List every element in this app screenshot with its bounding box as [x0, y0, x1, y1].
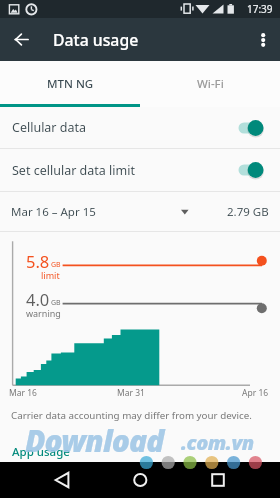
button[interactable]: Set cellular data limit	[0, 149, 280, 191]
staticText: GB	[51, 260, 61, 270]
button[interactable]: Mar 16 – Apr 15	[0, 192, 280, 231]
staticText: MTN NG	[47, 76, 94, 92]
staticText: 2.79 GB	[227, 204, 269, 220]
staticText: Mar 16	[9, 387, 37, 399]
button[interactable]: Navigate up	[0, 18, 44, 61]
staticText: Carrier data accounting may differ from …	[11, 409, 252, 422]
staticText: Mar 16 – Apr 15	[11, 204, 96, 220]
button[interactable]: MTN NG	[0, 61, 140, 107]
staticText: Download	[25, 420, 164, 461]
staticText: 4.0	[26, 288, 50, 310]
staticText: Apr 16	[242, 387, 269, 399]
staticText: App usage	[12, 444, 70, 460]
staticText: 5.8	[26, 250, 50, 272]
button[interactable]: Recent apps	[205, 467, 231, 493]
staticText: Cellular data	[12, 119, 87, 136]
staticText: warning	[26, 307, 61, 319]
staticText: limit	[41, 269, 60, 281]
staticText: Wi-Fi	[197, 76, 224, 92]
staticText: Set cellular data limit	[12, 162, 135, 179]
staticText: GB	[51, 298, 61, 308]
button[interactable]: More options	[244, 22, 280, 58]
button[interactable]: Cellular data	[0, 107, 280, 148]
staticText: .com.vn	[181, 429, 254, 456]
button[interactable]: Home	[127, 467, 153, 493]
button[interactable]: Back	[49, 467, 75, 493]
button[interactable]: Wi-Fi	[140, 61, 280, 107]
button[interactable]: App usage	[0, 440, 280, 463]
staticText: Mar 31	[117, 387, 145, 399]
staticText: Data usage	[53, 29, 139, 51]
staticText: 17:39	[247, 2, 273, 16]
